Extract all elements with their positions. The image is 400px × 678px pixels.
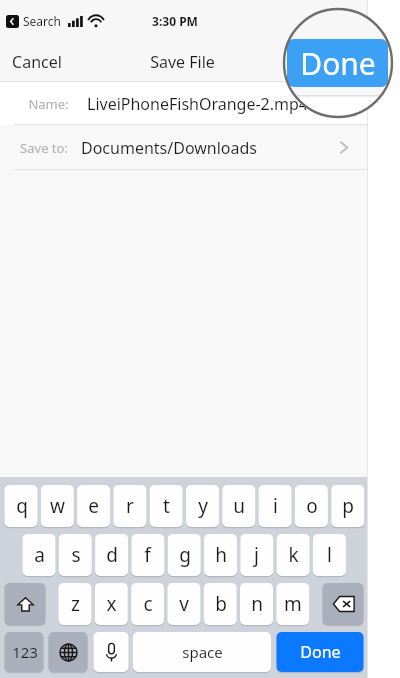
button[interactable]: s [59,534,92,576]
staticText: Cancel [12,51,62,73]
button[interactable]: a [23,534,56,576]
staticText: q [16,493,28,519]
button[interactable]: k [277,534,310,576]
staticText: d [106,542,118,568]
button[interactable]: u [222,485,255,527]
button[interactable]: r [113,485,146,527]
button[interactable]: Done [287,39,388,87]
button[interactable]: v [167,583,200,625]
staticText: 123 [12,642,38,662]
staticText: y [198,493,208,519]
button[interactable]: space [133,632,271,672]
staticText: Save File [150,51,215,73]
button[interactable]: n [240,583,273,625]
staticText: m [284,591,302,617]
staticText: w [50,493,65,519]
staticText: 3:30 PM [152,13,198,29]
button[interactable]: c [131,583,164,625]
button[interactable]: Done [277,632,364,672]
staticText: h [215,542,227,568]
button[interactable]: Name: [0,82,368,125]
button[interactable]: i [259,485,292,527]
button[interactable]: g [168,534,201,576]
button[interactable]: Cancel [6,45,68,79]
button[interactable]: e [77,485,110,527]
staticText: r [126,493,134,519]
staticText: n [251,591,263,617]
other: Choose folder [339,140,348,155]
button[interactable]: j [240,534,273,576]
staticText: Done [306,52,344,72]
button[interactable]: Done [292,48,358,76]
button[interactable]: f [131,534,164,576]
staticText: i [273,493,278,519]
staticText: b [215,591,227,617]
staticText: s [71,542,81,568]
button[interactable]: Backspace [323,583,364,625]
button[interactable]: Save to: [0,125,368,170]
staticText: Done [300,641,341,663]
staticText: v [179,591,189,617]
button[interactable]: b [204,583,237,625]
staticText: Done [300,43,376,84]
staticText: k [288,542,299,568]
staticText: f [144,542,151,568]
staticText: Search [23,13,61,29]
staticText: Name: [28,95,69,113]
staticText: Save to: [20,139,68,157]
button[interactable]: m [276,583,309,625]
staticText: c [143,591,153,617]
staticText: LiveiPhoneFishOrange-2.mp4 [87,93,308,115]
button[interactable]: 123 [5,632,44,672]
button[interactable]: w [41,485,74,527]
staticText: e [88,493,99,519]
button[interactable]: Dictate [94,632,129,672]
staticText: z [71,591,80,617]
button[interactable]: d [95,534,128,576]
button[interactable]: t [150,485,183,527]
staticText: g [179,542,191,568]
staticText: space [182,642,223,662]
button[interactable]: Shift [5,583,46,625]
button[interactable]: z [59,583,92,625]
button[interactable]: h [204,534,237,576]
staticText: o [306,493,318,519]
button[interactable]: q [5,485,38,527]
staticText: t [163,493,170,519]
button[interactable]: x [95,583,128,625]
staticText: l [327,542,332,568]
staticText: Documents/Downloads [81,137,257,159]
button[interactable]: o [295,485,328,527]
staticText: u [233,493,245,519]
button[interactable]: y [186,485,219,527]
button[interactable]: Change keyboard [49,632,88,672]
button[interactable]: p [331,485,364,527]
staticText: p [342,493,354,519]
staticText: a [34,542,45,568]
staticText: j [254,542,259,568]
staticText: x [106,591,117,617]
button[interactable]: l [313,534,346,576]
